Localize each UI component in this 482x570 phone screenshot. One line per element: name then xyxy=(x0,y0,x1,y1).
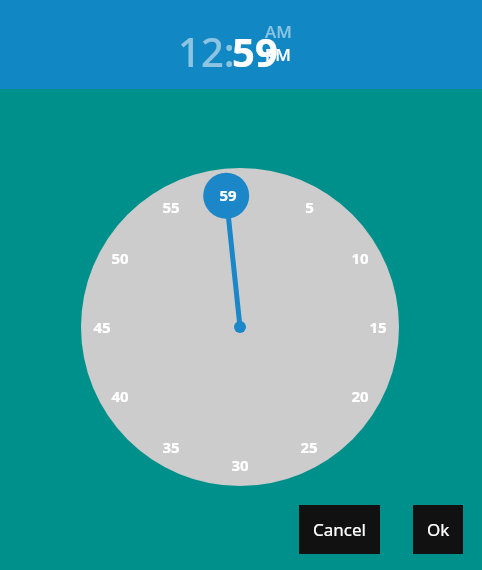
button[interactable]: 59 xyxy=(232,24,278,78)
staticText: 12: xyxy=(178,24,235,78)
button[interactable]: AM xyxy=(265,20,292,43)
staticText: 59 xyxy=(219,185,237,205)
staticText: 5 xyxy=(305,197,314,217)
staticText: 59 xyxy=(232,24,278,78)
staticText: 10 xyxy=(351,248,369,268)
staticText: 40 xyxy=(111,386,129,406)
button[interactable] xyxy=(0,0,482,570)
staticText: Cancel xyxy=(313,518,366,541)
staticText: 50 xyxy=(111,248,129,268)
staticText: 15 xyxy=(369,317,387,337)
staticText: 30 xyxy=(231,455,249,475)
button[interactable]: 12: xyxy=(178,24,235,78)
button[interactable]: PM xyxy=(265,43,291,66)
staticText: 25 xyxy=(300,437,318,457)
button[interactable]: Ok xyxy=(413,505,463,554)
staticText: 20 xyxy=(351,386,369,406)
staticText: PM xyxy=(265,43,291,66)
staticText: 45 xyxy=(93,317,111,337)
button[interactable]: Cancel xyxy=(299,505,380,554)
staticText: 35 xyxy=(162,437,180,457)
staticText: Ok xyxy=(427,518,450,541)
staticText: AM xyxy=(265,20,292,43)
staticText: 55 xyxy=(162,197,180,217)
